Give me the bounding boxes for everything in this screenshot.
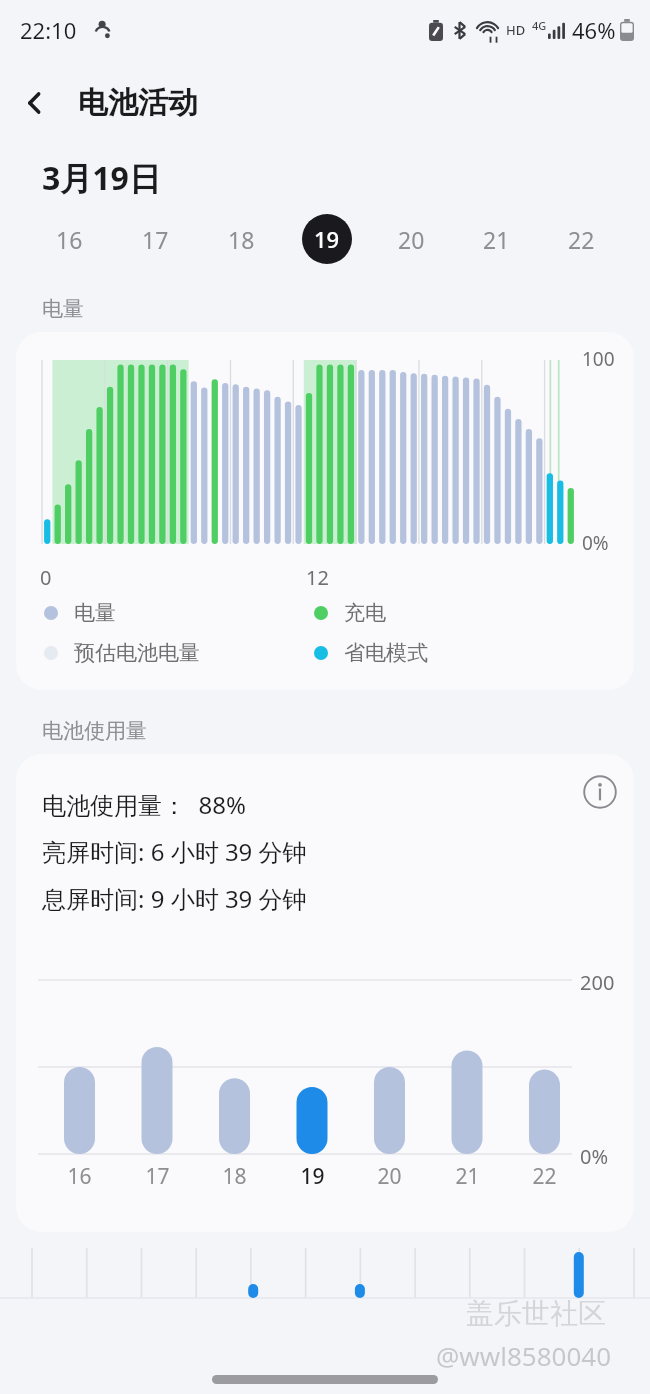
- staticText: 18: [222, 1162, 247, 1191]
- staticText: 20: [398, 224, 425, 255]
- button[interactable]: 17: [112, 200, 198, 278]
- staticText: 19: [314, 224, 340, 254]
- staticText: 18: [228, 224, 255, 255]
- staticText: @wwl8580040: [436, 1338, 612, 1373]
- staticText: 预估电池电量: [74, 640, 200, 666]
- button[interactable]: 19: [284, 200, 369, 278]
- staticText: 电量: [42, 296, 84, 322]
- staticText: 电池活动: [78, 84, 198, 122]
- staticText: 电池使用量: [42, 718, 147, 744]
- button[interactable]: 22: [539, 200, 624, 278]
- button[interactable]: 20: [369, 200, 454, 278]
- button[interactable]: Information: [575, 767, 625, 817]
- staticText: 亮屏时间: 6 小时 39 分钟: [42, 835, 307, 868]
- button[interactable]: 18: [198, 200, 284, 278]
- staticText: 充电: [344, 600, 386, 626]
- staticText: 21: [455, 1162, 480, 1191]
- button[interactable]: Back: [6, 74, 64, 132]
- staticText: 22:10: [20, 15, 77, 45]
- staticText: 46%: [572, 15, 616, 45]
- staticText: 200: [580, 969, 615, 996]
- staticText: 0: [40, 564, 52, 591]
- staticText: 12: [306, 564, 329, 591]
- staticText: 100: [582, 346, 615, 372]
- staticText: 17: [145, 1162, 170, 1191]
- staticText: 0%: [582, 530, 609, 556]
- staticText: 16: [56, 224, 83, 255]
- staticText: 19: [300, 1162, 325, 1191]
- button[interactable]: 21: [454, 200, 539, 278]
- staticText: 电量: [74, 600, 116, 626]
- staticText: 21: [483, 224, 510, 255]
- staticText: 电池使用量： 88%: [42, 788, 246, 821]
- staticText: 0%: [580, 1143, 609, 1170]
- staticText: 16: [67, 1162, 92, 1191]
- staticText: 息屏时间: 9 小时 39 分钟: [42, 882, 307, 915]
- button[interactable]: 16: [26, 200, 112, 278]
- staticText: 盖乐世社区: [466, 1296, 606, 1331]
- staticText: 省电模式: [344, 640, 428, 666]
- staticText: 22: [532, 1162, 557, 1191]
- staticText: 4G: [532, 18, 547, 33]
- staticText: 17: [142, 224, 169, 255]
- staticText: 22: [568, 224, 595, 255]
- button[interactable]: 100: [16, 332, 634, 690]
- staticText: 20: [377, 1162, 402, 1191]
- staticText: HD: [506, 21, 526, 39]
- staticText: 3月19日: [42, 156, 161, 200]
